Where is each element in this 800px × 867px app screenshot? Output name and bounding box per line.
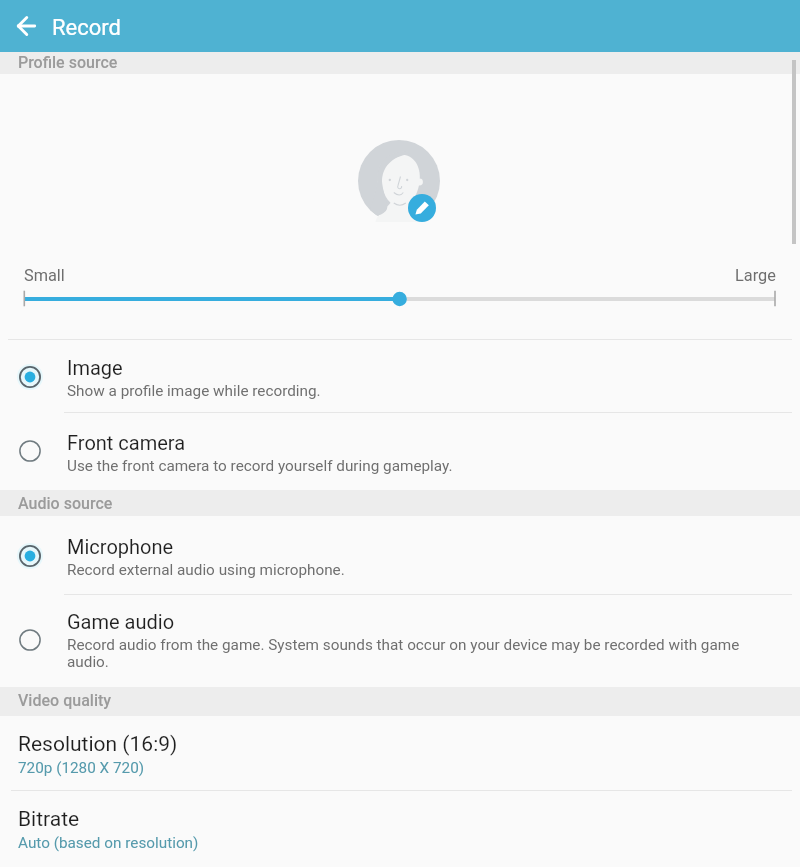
button[interactable]: Front camera [0, 413, 800, 490]
button[interactable]: Microphone [0, 516, 800, 594]
staticText: Game audio [67, 610, 175, 633]
staticText: Record audio from the game. System sound… [67, 636, 749, 671]
staticText: Bitrate [18, 807, 80, 832]
staticText: Microphone [67, 535, 174, 558]
staticText: Record [52, 15, 121, 41]
staticText: Large [735, 266, 776, 285]
staticText: Show a profile image while recording. [67, 382, 321, 400]
staticText: Auto (based on resolution) [18, 834, 199, 852]
staticText: Resolution (16:9) [18, 732, 178, 757]
staticText: Record external audio using microphone. [67, 561, 345, 579]
button[interactable]: Back [6, 6, 46, 46]
staticText: Profile source [18, 53, 118, 72]
button[interactable]: Edit profile image [408, 194, 436, 222]
button[interactable]: Game audio [0, 595, 800, 687]
staticText: Use the front camera to record yourself … [67, 457, 453, 475]
staticText: Image [67, 356, 123, 379]
button[interactable]: Image [0, 340, 800, 412]
button[interactable]: Bitrate [0, 791, 800, 867]
staticText: Front camera [67, 431, 186, 454]
staticText: Audio source [18, 494, 113, 513]
staticText: Small [24, 266, 65, 285]
staticText: Video quality [18, 691, 112, 710]
staticText: 720p (1280 X 720) [18, 759, 145, 777]
button[interactable]: Resolution (16:9) [0, 716, 800, 790]
